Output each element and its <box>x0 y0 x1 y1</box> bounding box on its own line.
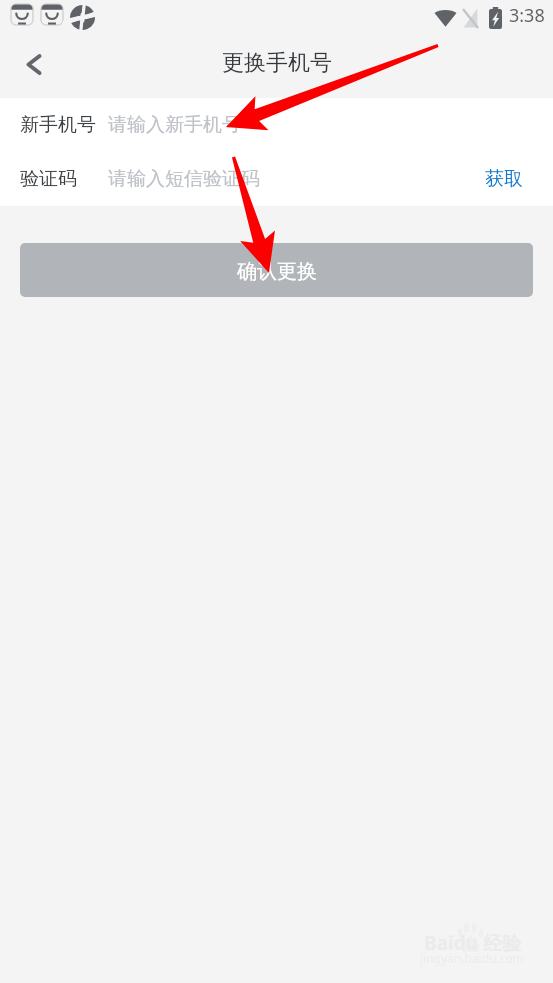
button[interactable]: Back <box>12 42 56 86</box>
staticText: 获取 <box>485 167 523 191</box>
staticText: 确认更换 <box>237 259 317 284</box>
staticText: 请输入新手机号 <box>108 113 241 137</box>
button[interactable]: 获取 <box>466 152 553 206</box>
staticText: 新手机号 <box>20 113 96 137</box>
staticText: 3:38 <box>509 3 545 28</box>
button[interactable]: 新手机号 <box>0 98 553 152</box>
button[interactable]: 确认更换 <box>20 243 533 297</box>
staticText: 验证码 <box>20 167 77 191</box>
button[interactable]: 验证码 <box>0 152 466 206</box>
staticText: Baidu 经验 <box>424 930 521 956</box>
staticText: 更换手机号 <box>222 49 332 77</box>
staticText: 请输入短信验证码 <box>108 167 260 191</box>
